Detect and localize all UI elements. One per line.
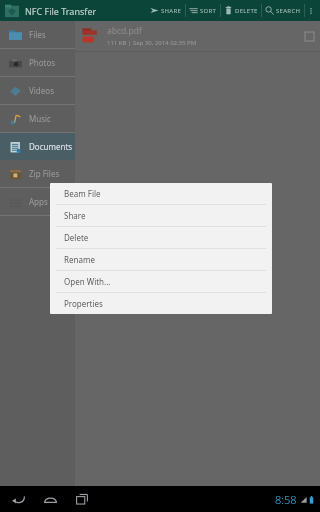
button[interactable]: Rename xyxy=(50,249,272,270)
staticText: 111 KB | Sep 30, 2014 02:35 PM xyxy=(107,39,197,47)
staticText: Videos xyxy=(29,85,54,96)
staticText: SHARE xyxy=(161,7,182,15)
button[interactable]: SEARCH xyxy=(262,0,304,21)
button[interactable]: Zip Files xyxy=(0,160,75,187)
button[interactable]: Delete xyxy=(50,227,272,248)
button[interactable]: Documents xyxy=(0,133,75,160)
staticText: Beam File xyxy=(64,188,101,199)
button[interactable]: Photos xyxy=(0,49,75,76)
staticText: SORT xyxy=(200,7,217,15)
button[interactable]: Videos xyxy=(0,77,75,104)
button[interactable]: DELETE xyxy=(221,0,261,21)
button[interactable]: Select abcd.pdf xyxy=(305,32,314,41)
button[interactable]: More options xyxy=(305,0,317,21)
button[interactable]: SORT xyxy=(186,0,220,21)
button[interactable]: Properties xyxy=(50,293,272,314)
staticText: DELETE xyxy=(235,7,258,15)
staticText: Properties xyxy=(64,298,103,309)
button[interactable]: Recent apps xyxy=(74,491,90,507)
button[interactable]: Beam File xyxy=(50,183,272,204)
staticText: Open With... xyxy=(64,276,111,287)
staticText: Music xyxy=(29,113,51,124)
staticText: 8:58 xyxy=(275,492,297,507)
staticText: Apps xyxy=(29,196,48,207)
button[interactable]: Share xyxy=(50,205,272,226)
staticText: Documents xyxy=(29,141,73,152)
button[interactable]: Home xyxy=(42,491,58,507)
button[interactable]: SHARE xyxy=(147,0,185,21)
staticText: Photos xyxy=(29,57,56,68)
staticText: abcd.pdf xyxy=(107,25,142,37)
staticText: Delete xyxy=(64,232,89,243)
button[interactable]: Music xyxy=(0,105,75,132)
button[interactable]: Apps xyxy=(0,188,75,215)
staticText: NFC File Transfer xyxy=(25,5,97,17)
staticText: Zip Files xyxy=(29,168,60,179)
button[interactable]: Open With... xyxy=(50,271,272,292)
button[interactable]: Back xyxy=(10,491,26,507)
staticText: Files xyxy=(29,29,46,40)
staticText: SEARCH xyxy=(276,7,301,15)
button[interactable]: App icon xyxy=(4,3,20,19)
staticText: Rename xyxy=(64,254,95,265)
button[interactable]: Files xyxy=(0,21,75,48)
button[interactable]: abcd.pdf xyxy=(75,21,320,51)
staticText: Share xyxy=(64,210,86,221)
